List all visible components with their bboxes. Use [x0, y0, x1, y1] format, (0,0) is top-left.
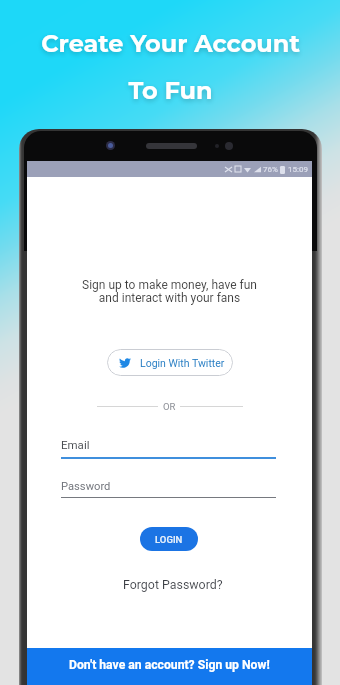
staticText: Login With Twitter	[140, 357, 225, 369]
staticText: Don't have an account? Sign up Now!	[69, 658, 270, 672]
button[interactable]: Forgot Password?	[123, 577, 223, 592]
staticText: 76%	[263, 165, 278, 174]
staticText: Email	[61, 438, 90, 451]
staticText: Create Your Account	[41, 29, 300, 58]
staticText: 15:09	[288, 165, 308, 174]
staticText: LOGIN	[155, 534, 183, 545]
button[interactable]: LOGIN	[140, 527, 198, 551]
staticText: Password	[61, 480, 111, 493]
staticText: Sign up to make money, have fun and inte…	[82, 278, 257, 305]
button[interactable]: Login With Twitter	[107, 349, 233, 376]
other: Login With Twitter	[119, 357, 131, 369]
button[interactable]: Don't have an account? Sign up Now!	[27, 648, 312, 685]
staticText: OR	[163, 401, 176, 412]
staticText: To Fun	[128, 76, 213, 105]
